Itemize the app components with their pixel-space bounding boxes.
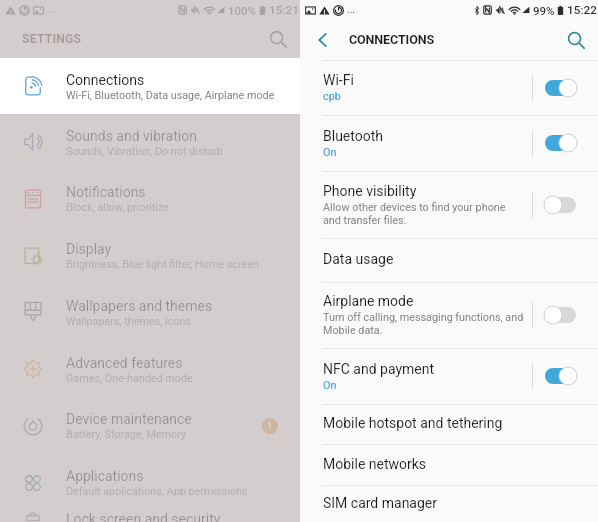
staticText: Connections	[66, 72, 145, 88]
staticText: 100%	[228, 4, 257, 17]
staticText: Allow other devices to find your phone a…	[323, 201, 506, 227]
staticText: 1	[267, 421, 273, 432]
button[interactable]: Wallpapers and themes	[0, 284, 300, 341]
button[interactable]: Search	[554, 20, 598, 60]
staticText: ...	[347, 4, 355, 16]
staticText: 99%	[533, 4, 555, 17]
staticText: CONNECTIONS	[349, 32, 434, 47]
staticText: Notifications	[66, 184, 146, 200]
button[interactable]: Device maintenance	[0, 397, 300, 454]
staticText: Phone visibility	[323, 183, 417, 199]
staticText: Wallpapers, themes, icons	[66, 315, 192, 328]
staticText: Applications	[66, 468, 144, 484]
button[interactable]: Mobile networks	[300, 444, 598, 485]
staticText: Mobile networks	[323, 456, 427, 472]
staticText: On	[323, 379, 337, 392]
button[interactable]: Back	[300, 20, 346, 60]
staticText: Data usage	[323, 251, 394, 267]
button[interactable]: Bluetooth	[300, 115, 598, 171]
staticText: SIM card manager	[323, 495, 438, 511]
staticText: Lock screen and security	[66, 511, 221, 522]
staticText: 15:22	[567, 3, 597, 17]
button[interactable]: Applications	[0, 454, 300, 511]
staticText: ...	[47, 4, 55, 16]
button[interactable]: Advanced features	[0, 341, 300, 397]
button[interactable]: Notifications	[0, 170, 300, 227]
button[interactable]: Wi-Fi	[300, 60, 598, 115]
button[interactable]: Display	[0, 227, 300, 284]
staticText: Mobile hotspot and tethering	[323, 415, 503, 431]
staticText: Block, allow, prioritize	[66, 201, 169, 214]
staticText: Wi-Fi	[323, 72, 354, 88]
button[interactable]: NFC and payment toggle	[542, 365, 579, 387]
staticText: Display	[66, 241, 112, 257]
staticText: Wi-Fi, Bluetooth, Data usage, Airplane m…	[66, 89, 275, 102]
staticText: Advanced features	[66, 355, 183, 371]
staticText: Bluetooth	[323, 128, 383, 144]
staticText: Sounds, Vibration, Do not disturb	[66, 145, 223, 158]
button[interactable]: Airplane mode toggle	[542, 304, 579, 326]
staticText: Device maintenance	[66, 411, 192, 427]
staticText: NFC and payment	[323, 361, 435, 377]
staticText: Battery, Storage, Memory	[66, 428, 187, 441]
staticText: Airplane mode	[323, 293, 414, 309]
button[interactable]: Phone visibility toggle	[542, 194, 579, 216]
button[interactable]: Bluetooth toggle	[542, 132, 579, 154]
button[interactable]: Mobile hotspot and tethering	[300, 404, 598, 444]
staticText: 15:21	[269, 3, 299, 17]
button[interactable]: Wi-Fi toggle	[542, 77, 579, 99]
button[interactable]: Connections	[0, 58, 300, 114]
button[interactable]: Sounds and vibration	[0, 114, 300, 170]
staticText: Sounds and vibration	[66, 128, 197, 144]
staticText: SETTINGS	[22, 32, 82, 46]
button[interactable]: NFC and payment	[300, 348, 598, 404]
staticText: Games, One-handed mode	[66, 372, 193, 385]
button[interactable]: Data usage	[300, 238, 598, 282]
staticText: Brightness, Blue light filter, Home scre…	[66, 258, 259, 271]
staticText: Turn off calling, messaging functions, a…	[323, 311, 524, 337]
staticText: Wallpapers and themes	[66, 298, 213, 314]
staticText: Default applications, App permissions	[66, 485, 248, 498]
button[interactable]: Search	[256, 20, 300, 58]
staticText: On	[323, 146, 337, 159]
button[interactable]: Phone visibility	[300, 171, 598, 238]
staticText: cpb	[323, 90, 341, 103]
button[interactable]: Airplane mode	[300, 282, 598, 348]
button[interactable]: SIM card manager	[300, 485, 598, 522]
button[interactable]: Lock screen and security	[0, 511, 300, 522]
